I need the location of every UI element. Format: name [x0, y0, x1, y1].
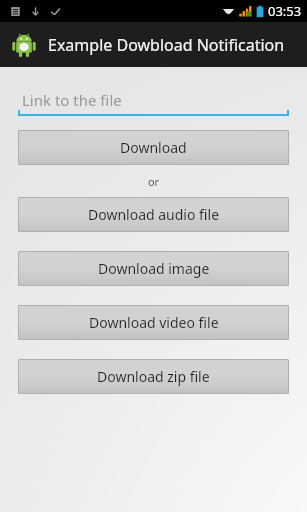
button[interactable]: Link to the file	[18, 87, 289, 119]
button[interactable]: Download	[18, 130, 289, 165]
other: App icon	[9, 30, 39, 60]
button[interactable]: Download audio file	[18, 197, 289, 232]
staticText: Download image	[98, 259, 210, 278]
button[interactable]: Download image	[18, 251, 289, 286]
staticText: Link to the file	[22, 90, 122, 110]
button[interactable]: Download zip file	[18, 359, 289, 394]
button[interactable]: Download video file	[18, 305, 289, 340]
staticText: Download audio file	[88, 205, 220, 224]
staticText: 03:53	[268, 2, 302, 20]
staticText: Download video file	[89, 313, 219, 332]
staticText: Example Dowbload Notification	[48, 34, 285, 56]
staticText: or	[0, 174, 307, 189]
staticText: Download	[120, 138, 187, 157]
staticText: Download zip file	[97, 367, 210, 386]
